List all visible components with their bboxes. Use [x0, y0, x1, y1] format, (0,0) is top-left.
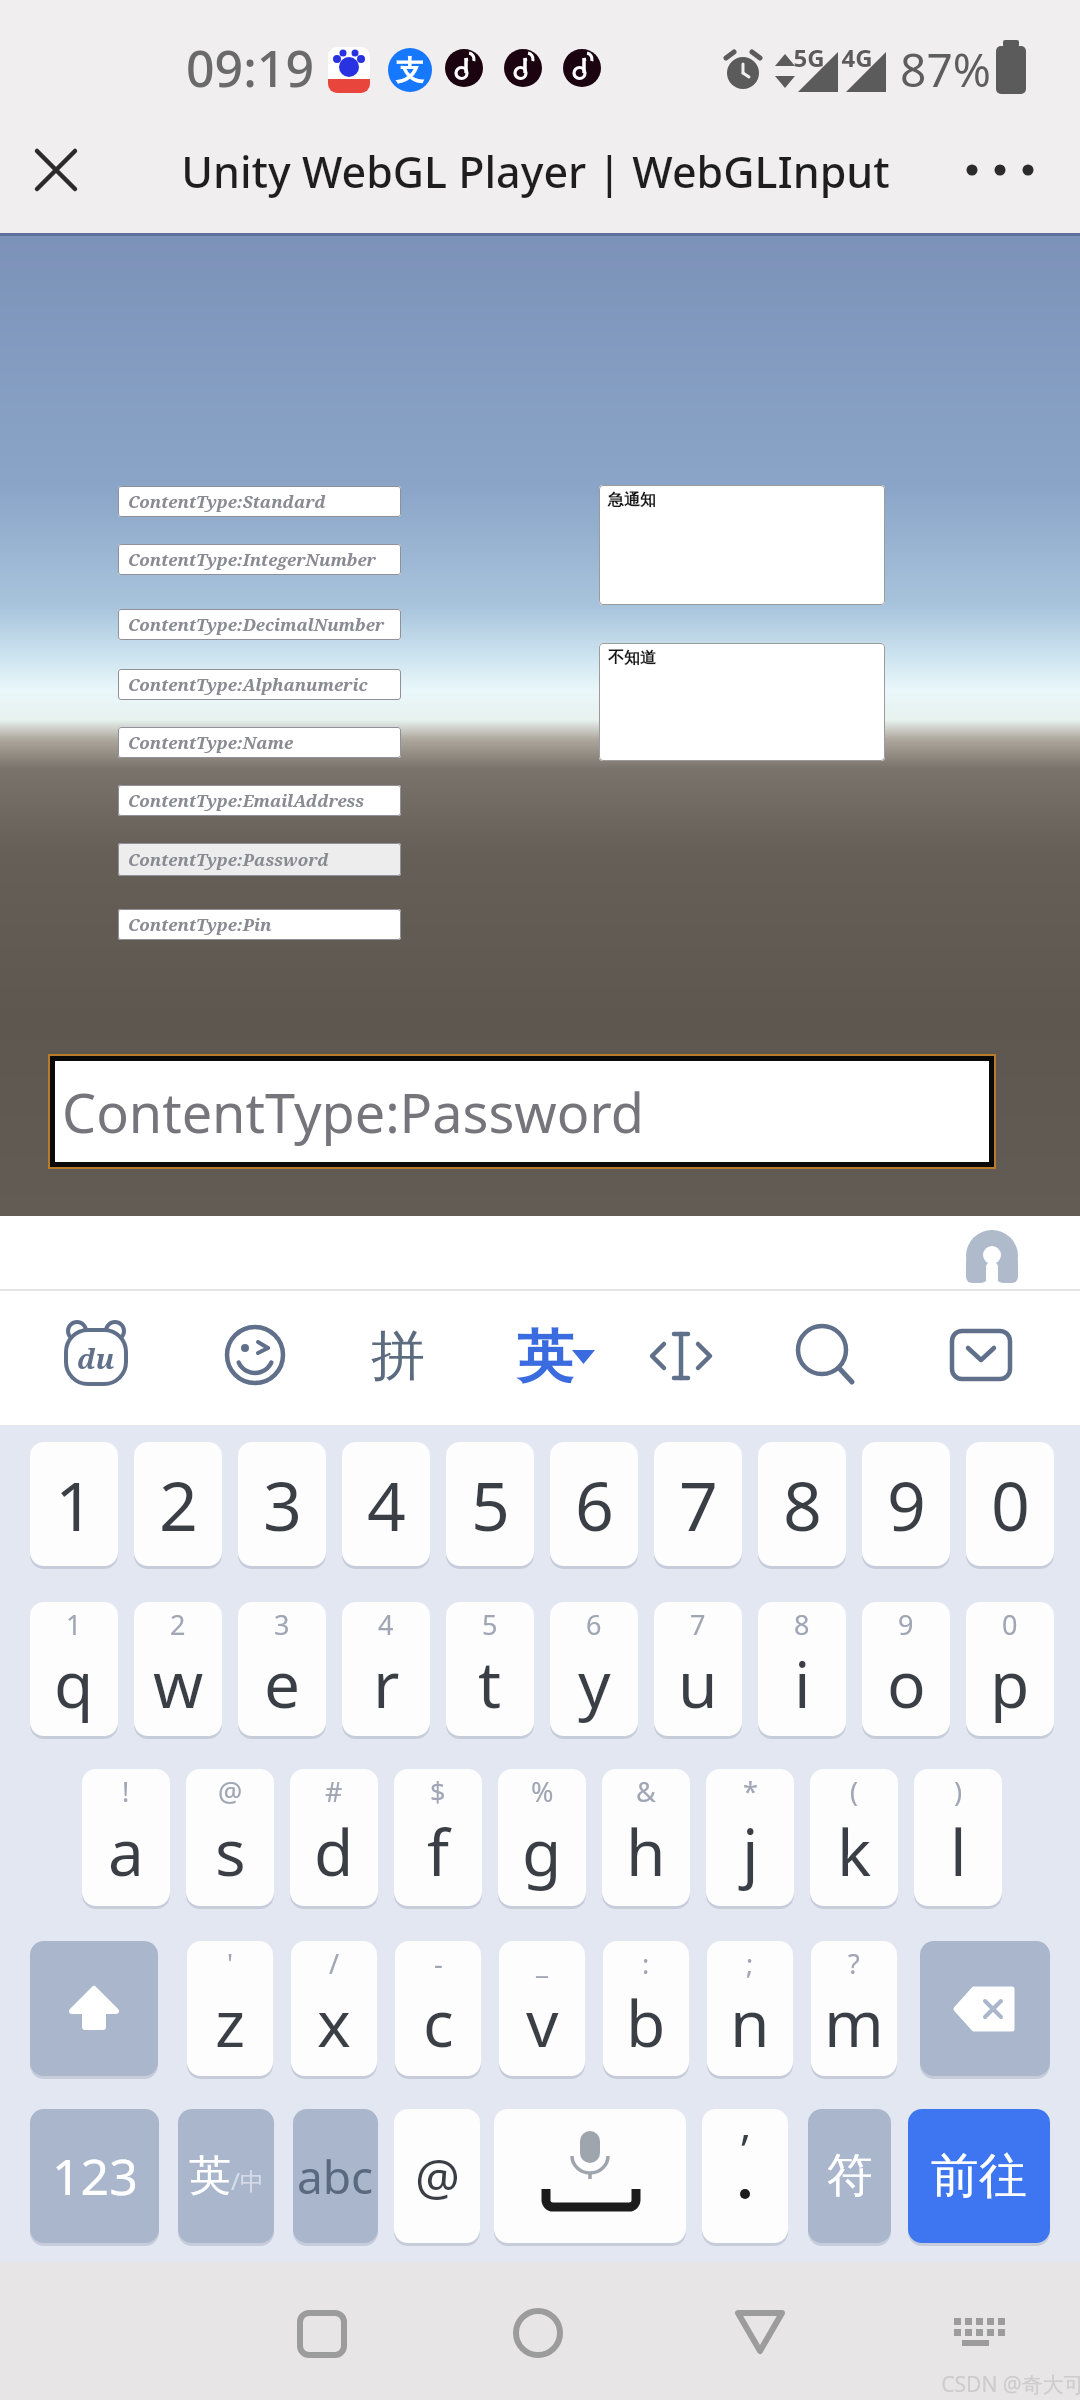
button[interactable]: 符	[808, 2109, 891, 2243]
button[interactable]: 3	[238, 1602, 326, 1736]
staticText: s	[215, 1808, 246, 1895]
button[interactable]: 4	[342, 1602, 430, 1736]
button[interactable]: 0	[966, 1602, 1054, 1736]
button[interactable]	[222, 1322, 288, 1388]
button[interactable]: 9	[862, 1602, 950, 1736]
button[interactable]: 急通知	[599, 485, 885, 605]
button[interactable]	[280, 2293, 364, 2375]
button[interactable]: $	[394, 1769, 482, 1906]
button[interactable]: &	[602, 1769, 690, 1906]
button[interactable]: 2	[134, 1442, 222, 1566]
staticText: 支	[396, 53, 424, 88]
button[interactable]: (	[810, 1769, 898, 1906]
button[interactable]: ContentType:DecimalNumber	[118, 609, 401, 640]
button[interactable]: ’	[702, 2109, 788, 2243]
staticText: m	[824, 1979, 884, 2066]
button[interactable]: 8	[758, 1442, 846, 1566]
button[interactable]: #	[290, 1769, 378, 1906]
staticText: #	[325, 1773, 343, 1810]
button[interactable]: 6	[550, 1602, 638, 1736]
button[interactable]: 4	[342, 1442, 430, 1566]
button[interactable]: 英	[178, 2109, 274, 2243]
button[interactable]: abc	[293, 2109, 378, 2243]
staticText: 4	[367, 1458, 406, 1551]
staticText: 7	[679, 1458, 718, 1551]
button[interactable]: '	[187, 1941, 273, 2076]
button[interactable]	[496, 2291, 580, 2375]
button[interactable]: 5	[446, 1602, 534, 1736]
button[interactable]: 9	[862, 1442, 950, 1566]
button[interactable]: 前往	[908, 2109, 1050, 2243]
staticText: ?	[848, 1945, 860, 1982]
staticText: 不知道	[608, 648, 656, 668]
button[interactable]: 2	[134, 1602, 222, 1736]
staticText: @	[415, 2142, 460, 2210]
staticText: ContentType:Standard	[128, 490, 326, 513]
button[interactable]: ContentType:EmailAddress	[118, 785, 401, 816]
staticText: 1	[66, 1606, 82, 1643]
button[interactable]: :	[603, 1941, 689, 2076]
button[interactable]: 8	[758, 1602, 846, 1736]
button[interactable]: @	[186, 1769, 274, 1906]
button[interactable]: ContentType:Name	[118, 727, 401, 758]
staticText: 87%	[900, 38, 991, 101]
button[interactable]: 1	[30, 1442, 118, 1566]
staticText: 0	[991, 1458, 1030, 1551]
button[interactable]	[960, 140, 1050, 200]
button[interactable]: )	[914, 1769, 1002, 1906]
button[interactable]: ;	[707, 1941, 793, 2076]
button[interactable]: ContentType:Standard	[118, 486, 401, 517]
staticText: 4	[378, 1606, 394, 1643]
button[interactable]: @	[394, 2109, 480, 2243]
button[interactable]: 5	[446, 1442, 534, 1566]
button[interactable]	[30, 1941, 158, 2076]
staticText: /	[329, 1945, 340, 1982]
staticText: 7	[690, 1606, 706, 1643]
button[interactable]: 7	[654, 1442, 742, 1566]
staticText: c	[423, 1979, 454, 2066]
button[interactable]: ContentType:Password	[50, 1056, 994, 1167]
staticText: -	[434, 1945, 443, 1982]
button[interactable]	[940, 2300, 1012, 2360]
button[interactable]: 0	[966, 1442, 1054, 1566]
staticText: 0	[1002, 1606, 1018, 1643]
button[interactable]: /	[291, 1941, 377, 2076]
button[interactable]: *	[706, 1769, 794, 1906]
button[interactable]: ContentType:Password	[118, 843, 401, 876]
button[interactable]: !	[82, 1769, 170, 1906]
button[interactable]: ContentType:IntegerNumber	[118, 544, 401, 575]
button[interactable]: ?	[811, 1941, 897, 2076]
button[interactable]: 7	[654, 1602, 742, 1736]
staticText: 符	[827, 2147, 873, 2205]
button[interactable]: 123	[30, 2109, 159, 2243]
staticText: ContentType:IntegerNumber	[128, 548, 376, 571]
button[interactable]	[792, 1320, 862, 1390]
staticText: !	[122, 1773, 130, 1810]
button[interactable]: ContentType:Alphanumeric	[118, 669, 401, 700]
button[interactable]: %	[498, 1769, 586, 1906]
staticText: 123	[52, 2142, 138, 2210]
button[interactable]	[648, 1326, 714, 1388]
button[interactable]	[920, 1941, 1050, 2076]
button[interactable]	[950, 1329, 1012, 1381]
button[interactable]: 6	[550, 1442, 638, 1566]
staticText: 拼	[371, 1322, 425, 1390]
button[interactable]: 3	[238, 1442, 326, 1566]
staticText: l	[950, 1808, 967, 1895]
staticText: k	[837, 1808, 872, 1895]
button[interactable]	[718, 2293, 802, 2375]
button[interactable]: _	[499, 1941, 585, 2076]
button[interactable]	[26, 140, 86, 200]
button[interactable]	[494, 2109, 686, 2243]
staticText: i	[794, 1640, 811, 1727]
button[interactable]: 英	[459, 1312, 631, 1402]
staticText: ContentType:Name	[128, 731, 294, 754]
button[interactable]: 拼	[314, 1311, 482, 1401]
button[interactable]: -	[395, 1941, 481, 2076]
staticText: v	[526, 1979, 559, 2066]
staticText: ContentType:Pin	[128, 913, 272, 936]
button[interactable]: 不知道	[599, 643, 885, 761]
button[interactable]: 1	[30, 1602, 118, 1736]
button[interactable]: du	[56, 1318, 136, 1394]
button[interactable]: ContentType:Pin	[118, 909, 401, 940]
